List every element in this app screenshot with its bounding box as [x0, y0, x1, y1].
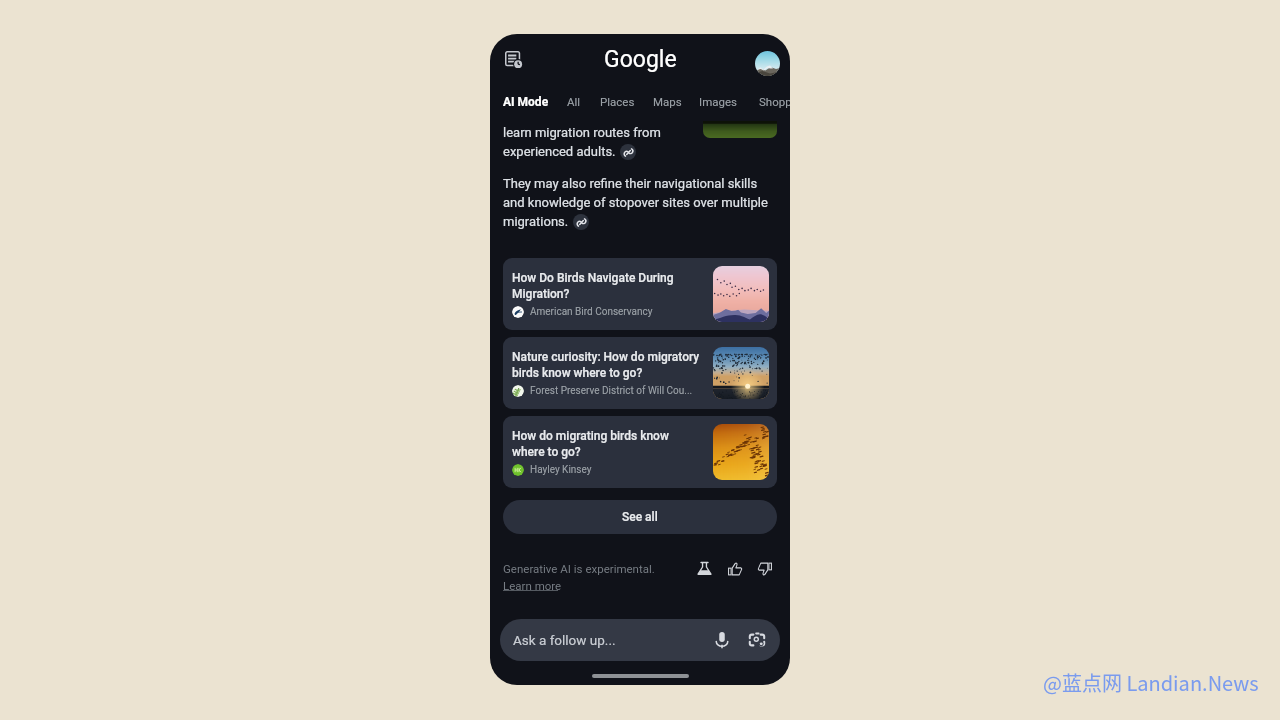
button[interactable]: Nature curiosity: How do migratory birds… — [503, 337, 777, 409]
staticText: and knowledge of stopover sites over mul… — [503, 195, 768, 210]
staticText: They may also refine their navigational … — [503, 176, 758, 191]
button[interactable]: Learn more — [503, 579, 562, 592]
staticText: migrations. — [503, 214, 569, 229]
staticText: Shopping — [759, 95, 790, 108]
button[interactable]: Maps — [653, 95, 682, 108]
button[interactable]: Source link — [620, 144, 636, 160]
staticText: Images — [699, 95, 737, 108]
staticText: Learn more — [503, 579, 562, 592]
staticText: Hayley Kinsey — [530, 464, 592, 476]
button[interactable]: Images — [699, 95, 737, 108]
staticText: How Do Birds Navigate During Migration? — [512, 271, 703, 301]
button[interactable]: Search history — [501, 47, 527, 73]
button[interactable]: All — [567, 95, 581, 108]
staticText: Forest Preserve District of Will Cou... — [530, 385, 693, 397]
staticText: Generative AI is experimental. — [503, 562, 655, 575]
button[interactable]: Labs — [697, 561, 712, 576]
button[interactable]: Thumbs down — [757, 561, 772, 576]
staticText: AI Mode — [503, 95, 549, 109]
staticText: experienced adults. — [503, 144, 616, 159]
button[interactable]: AI Mode — [503, 95, 549, 109]
button[interactable]: Thumbs up — [727, 561, 742, 576]
button[interactable]: Voice search — [711, 629, 733, 651]
staticText: Places — [600, 95, 635, 108]
staticText: American Bird Conservancy — [530, 306, 653, 318]
button[interactable]: Ask a follow up... — [500, 619, 780, 661]
staticText: @蓝点网 Landian.News — [1043, 668, 1259, 697]
staticText: learn migration routes from — [503, 125, 661, 140]
staticText: Ask a follow up... — [513, 632, 616, 648]
button[interactable]: Source link — [573, 214, 589, 230]
staticText: Google — [604, 46, 677, 73]
staticText: All — [567, 95, 581, 108]
button[interactable]: Places — [600, 95, 635, 108]
button[interactable]: How do migrating birds know where to go? — [503, 416, 777, 488]
button[interactable]: Shopping — [759, 95, 790, 108]
staticText: Maps — [653, 95, 682, 108]
button[interactable]: Account — [755, 51, 780, 76]
button[interactable]: See all — [503, 500, 777, 534]
staticText: See all — [622, 510, 658, 524]
button[interactable]: How Do Birds Navigate During Migration? — [503, 258, 777, 330]
staticText: Nature curiosity: How do migratory birds… — [512, 350, 703, 380]
staticText: How do migrating birds know where to go? — [512, 429, 703, 459]
button[interactable]: Google Lens — [746, 629, 768, 651]
